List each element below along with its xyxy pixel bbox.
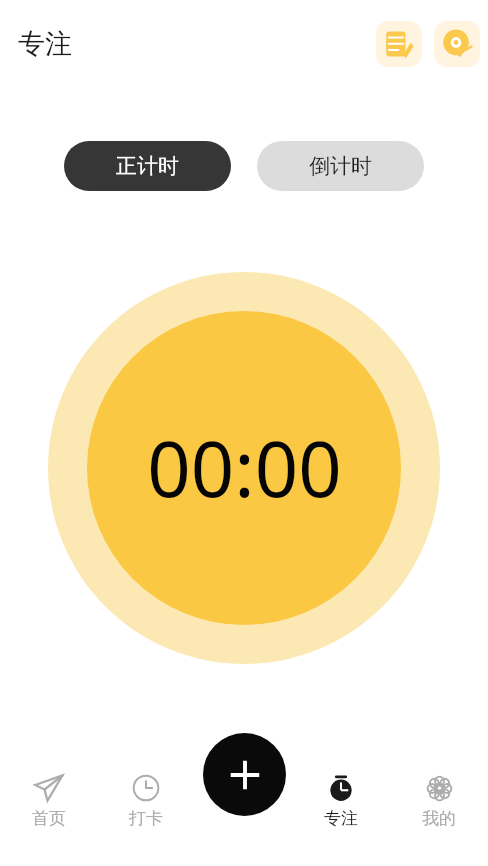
button[interactable]: 打卡 [97,773,194,866]
staticText: 专注 [324,808,358,829]
staticText: 我的 [422,808,456,829]
button[interactable]: Music [434,21,480,67]
staticText: 正计时 [116,153,179,179]
staticText: 专注 [18,27,72,61]
button[interactable]: 倒计时 [257,141,424,191]
staticText: 倒计时 [309,153,372,179]
button[interactable]: 首页 [0,773,97,866]
button[interactable]: 我的 [390,773,488,866]
staticText: 00:00 [147,416,342,520]
button[interactable]: Notes [376,21,422,67]
button[interactable]: Add [203,733,286,816]
button[interactable]: 正计时 [64,141,231,191]
button[interactable]: 专注 [292,773,390,866]
button[interactable]: 00:00 [48,272,440,664]
staticText: 打卡 [129,808,163,829]
staticText: 首页 [32,808,66,829]
